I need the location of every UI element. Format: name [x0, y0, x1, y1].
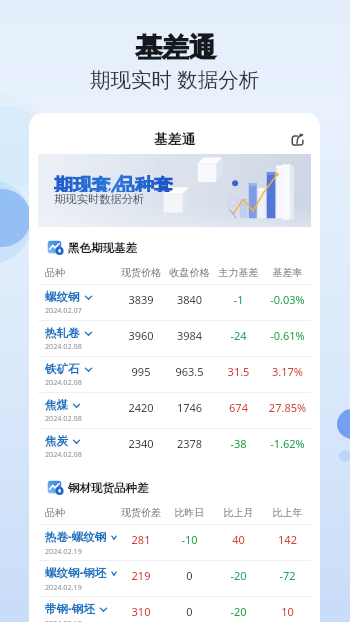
- staticText: 10: [263, 604, 312, 619]
- staticText: 期现实时 数据分析: [90, 65, 260, 93]
- staticText: 2024.02.08: [45, 413, 82, 423]
- button[interactable]: 热卷-螺纹钢: [29, 525, 320, 560]
- staticText: 焦煤: [45, 398, 68, 412]
- staticText: 焦炭: [45, 434, 68, 448]
- staticText: 31.5: [214, 364, 263, 379]
- staticText: 热轧卷: [45, 326, 80, 340]
- staticText: 2024.02.07: [45, 305, 82, 315]
- staticText: -24: [214, 328, 263, 343]
- button[interactable]: 热轧卷: [29, 321, 320, 356]
- staticText: 3839: [117, 292, 165, 307]
- staticText: 2024.02.08: [45, 449, 82, 459]
- staticText: 0: [165, 568, 214, 583]
- button[interactable]: 螺纹钢: [29, 285, 320, 320]
- staticText: 品种: [45, 506, 117, 519]
- staticText: 主力基差: [214, 266, 263, 279]
- staticText: 142: [263, 532, 312, 547]
- button[interactable]: 焦煤: [29, 393, 320, 428]
- staticText: 995: [117, 364, 165, 379]
- staticText: 3984: [165, 328, 214, 343]
- staticText: 1746: [165, 400, 214, 415]
- staticText: 现货价差: [117, 506, 165, 519]
- button[interactable]: 焦炭: [29, 429, 320, 464]
- staticText: 219: [117, 568, 165, 583]
- staticText: 比上年: [263, 506, 312, 519]
- staticText: 铁矿石: [45, 362, 80, 376]
- staticText: 2024.02.19: [45, 546, 82, 556]
- button[interactable]: 螺纹钢-钢坯: [29, 561, 320, 596]
- staticText: 品种: [45, 266, 117, 279]
- staticText: 2024.02.19: [45, 582, 82, 592]
- staticText: -0.03%: [263, 292, 312, 307]
- staticText: -0.61%: [263, 328, 312, 343]
- staticText: -20: [214, 604, 263, 619]
- staticText: 27.85%: [263, 400, 312, 415]
- staticText: 40: [214, 532, 263, 547]
- staticText: -1: [214, 292, 263, 307]
- staticText: 基差通: [154, 131, 196, 148]
- staticText: 2340: [117, 436, 165, 451]
- staticText: 674: [214, 400, 263, 415]
- button[interactable]: 铁矿石: [29, 357, 320, 392]
- staticText: 基差率: [263, 266, 312, 279]
- staticText: 钢材现货品种差: [68, 481, 149, 495]
- staticText: 281: [117, 532, 165, 547]
- staticText: 期现套 品种套: [54, 172, 173, 192]
- staticText: -38: [214, 436, 263, 451]
- staticText: 963.5: [165, 364, 214, 379]
- staticText: 黑色期现基差: [68, 241, 137, 255]
- staticText: 热卷-螺纹钢: [45, 529, 107, 545]
- button[interactable]: 带钢-钢坯: [29, 597, 320, 622]
- staticText: 310: [117, 604, 165, 619]
- button[interactable]: Share: [286, 129, 308, 151]
- button[interactable]: 期现套 品种套: [38, 154, 311, 227]
- staticText: 2378: [165, 436, 214, 451]
- staticText: 基差通: [135, 31, 216, 65]
- staticText: -10: [165, 532, 214, 547]
- staticText: -20: [214, 568, 263, 583]
- staticText: 3840: [165, 292, 214, 307]
- staticText: -72: [263, 568, 312, 583]
- staticText: 螺纹钢: [45, 290, 80, 304]
- staticText: 期现实时数据分析: [54, 192, 145, 206]
- staticText: 带钢-钢坯: [45, 601, 95, 617]
- staticText: 3.17%: [263, 364, 312, 379]
- staticText: 2024.02.08: [45, 377, 82, 387]
- staticText: 收盘价格: [165, 266, 214, 279]
- staticText: 3960: [117, 328, 165, 343]
- staticText: -1.62%: [263, 436, 312, 451]
- staticText: 比上月: [214, 506, 263, 519]
- staticText: 螺纹钢-钢坯: [45, 565, 107, 581]
- staticText: 2420: [117, 400, 165, 415]
- staticText: 现货价格: [117, 266, 165, 279]
- staticText: 比昨日: [165, 506, 214, 519]
- staticText: 0: [165, 604, 214, 619]
- staticText: 2024.02.08: [45, 341, 82, 351]
- staticText: 2024.02.19: [45, 618, 82, 622]
